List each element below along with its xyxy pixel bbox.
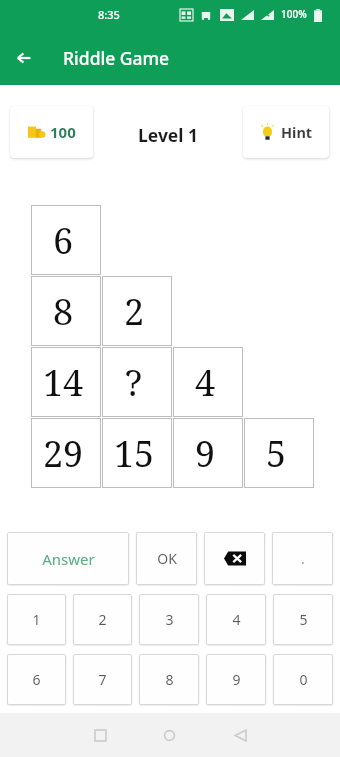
button[interactable]: Answer — [7, 532, 129, 585]
button[interactable]: 8 — [139, 654, 199, 705]
staticText: 3 — [165, 610, 174, 629]
staticText: OK — [157, 549, 177, 568]
staticText: 6 — [32, 670, 41, 689]
button[interactable]: 0 — [273, 654, 333, 705]
staticText: 8 — [53, 287, 74, 336]
staticText: Level 1 — [138, 123, 199, 147]
staticText: 100 — [50, 122, 76, 142]
staticText: 7 — [98, 670, 107, 689]
button[interactable]: 29 — [31, 418, 101, 488]
button[interactable]: 4 — [173, 347, 243, 417]
staticText: 14 — [43, 358, 84, 407]
staticText: 4 — [232, 610, 241, 629]
button[interactable]: 5 — [244, 418, 314, 488]
staticText: 4 — [195, 358, 216, 407]
staticText: Answer — [42, 549, 95, 569]
button[interactable]: Recents — [65, 713, 135, 757]
button[interactable]: ? — [102, 347, 172, 417]
staticText: 2 — [98, 610, 107, 629]
button[interactable]: 9 — [173, 418, 243, 488]
button[interactable]: 6 — [31, 205, 101, 275]
button[interactable]: Home — [134, 713, 204, 757]
button[interactable]: 8 — [31, 276, 101, 346]
staticText: Hint — [281, 122, 313, 142]
button[interactable]: Hint — [243, 106, 329, 158]
button[interactable]: 5 — [273, 594, 333, 645]
staticText: 5 — [299, 610, 308, 629]
staticText: 0 — [299, 670, 308, 689]
staticText: ? — [125, 358, 143, 407]
staticText: 8 — [165, 670, 174, 689]
staticText: 9 — [232, 670, 241, 689]
button[interactable]: . — [272, 532, 333, 585]
staticText: 9 — [195, 429, 216, 478]
button[interactable]: 100 — [10, 106, 93, 158]
button[interactable]: 15 — [102, 418, 172, 488]
staticText: Riddle Game — [63, 46, 170, 70]
button[interactable]: Back — [205, 713, 275, 757]
button[interactable]: 2 — [102, 276, 172, 346]
staticText: 2 — [124, 287, 145, 336]
staticText: 1 — [32, 610, 41, 629]
button[interactable]: Backspace — [204, 532, 265, 585]
button[interactable]: 7 — [73, 654, 132, 705]
button[interactable]: Back — [0, 30, 47, 85]
button[interactable]: 3 — [139, 594, 199, 645]
staticText: 100% — [281, 7, 307, 21]
staticText: 5 — [266, 429, 287, 478]
staticText: 6 — [53, 216, 74, 265]
button[interactable]: 1 — [7, 594, 66, 645]
staticText: 29 — [43, 429, 84, 478]
button[interactable]: 6 — [7, 654, 66, 705]
button[interactable]: 9 — [206, 654, 266, 705]
button[interactable]: 4 — [206, 594, 266, 645]
button[interactable]: 2 — [73, 594, 132, 645]
button[interactable]: 14 — [31, 347, 101, 417]
staticText: . — [301, 549, 305, 568]
button[interactable]: OK — [136, 532, 197, 585]
staticText: 8:35 — [98, 7, 120, 22]
staticText: 15 — [114, 429, 155, 478]
